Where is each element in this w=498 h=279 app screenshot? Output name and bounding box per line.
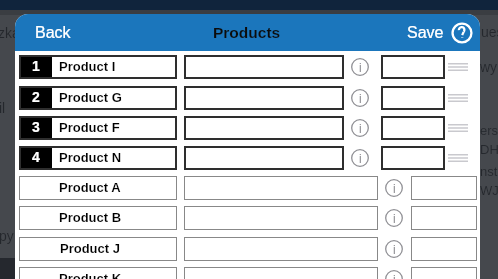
staticText: Back <box>35 24 71 42</box>
button[interactable] <box>184 267 378 279</box>
button[interactable] <box>381 116 445 140</box>
button[interactable] <box>184 116 344 140</box>
staticText: zka <box>0 25 20 41</box>
staticText: i <box>393 182 396 195</box>
button[interactable]: Back <box>25 18 81 48</box>
button[interactable] <box>411 237 477 261</box>
button[interactable]: Info <box>349 55 371 79</box>
staticText: Product A <box>59 180 121 195</box>
button[interactable]: Info <box>349 116 371 140</box>
staticText: wy <box>480 59 498 75</box>
staticText: Product F <box>59 120 120 135</box>
staticText: i <box>359 61 362 74</box>
button[interactable]: Info <box>383 176 405 200</box>
staticText: DHA <box>480 142 498 157</box>
button[interactable]: Info <box>383 267 405 279</box>
staticText: Product G <box>59 90 122 105</box>
staticText: 4 <box>32 149 40 165</box>
button[interactable] <box>381 146 445 170</box>
button[interactable]: 4 <box>19 146 177 170</box>
button[interactable] <box>411 267 477 279</box>
staticText: Products <box>213 24 281 41</box>
staticText: WJ <box>480 183 498 198</box>
staticText: 1 <box>32 58 40 74</box>
staticText: i <box>393 243 396 256</box>
staticText: Product B <box>59 210 122 225</box>
button[interactable]: Reorder <box>445 55 471 79</box>
button[interactable] <box>411 206 477 230</box>
button[interactable]: Info <box>383 206 405 230</box>
staticText: i <box>359 92 362 105</box>
button[interactable]: Product J <box>19 237 177 261</box>
button[interactable]: 3 <box>19 116 177 140</box>
button[interactable]: Product A <box>19 176 177 200</box>
staticText: 3 <box>32 119 40 135</box>
button[interactable]: Reorder <box>445 146 471 170</box>
staticText: 2 <box>32 89 40 105</box>
button[interactable] <box>184 146 344 170</box>
button[interactable]: Reorder <box>445 86 471 110</box>
staticText: i <box>359 122 362 135</box>
staticText: ers <box>480 123 498 138</box>
staticText: nsti <box>480 164 498 179</box>
button[interactable]: 1 <box>19 55 177 79</box>
button[interactable]: Product B <box>19 206 177 230</box>
staticText: Product J <box>60 241 120 256</box>
staticText: Product K <box>59 271 122 279</box>
staticText: Product N <box>59 150 122 165</box>
staticText: Save <box>407 24 444 42</box>
button[interactable] <box>381 86 445 110</box>
button[interactable]: Save <box>402 18 449 48</box>
staticText: i <box>393 212 396 225</box>
button[interactable] <box>411 176 477 200</box>
staticText: py <box>0 228 14 244</box>
button[interactable] <box>184 86 344 110</box>
button[interactable]: Help <box>448 19 475 46</box>
button[interactable] <box>184 237 378 261</box>
button[interactable] <box>184 176 378 200</box>
button[interactable]: Info <box>349 86 371 110</box>
button[interactable]: 2 <box>19 86 177 110</box>
button[interactable]: Info <box>349 146 371 170</box>
staticText: ues <box>481 24 498 40</box>
staticText: i <box>359 152 362 165</box>
button[interactable]: Product K <box>19 267 177 279</box>
staticText: Product I <box>59 59 116 74</box>
button[interactable] <box>184 206 378 230</box>
button[interactable] <box>184 55 344 79</box>
button[interactable] <box>381 55 445 79</box>
button[interactable]: Reorder <box>445 116 471 140</box>
staticText: i <box>393 273 396 279</box>
staticText: il <box>0 100 6 116</box>
button[interactable]: Info <box>383 237 405 261</box>
